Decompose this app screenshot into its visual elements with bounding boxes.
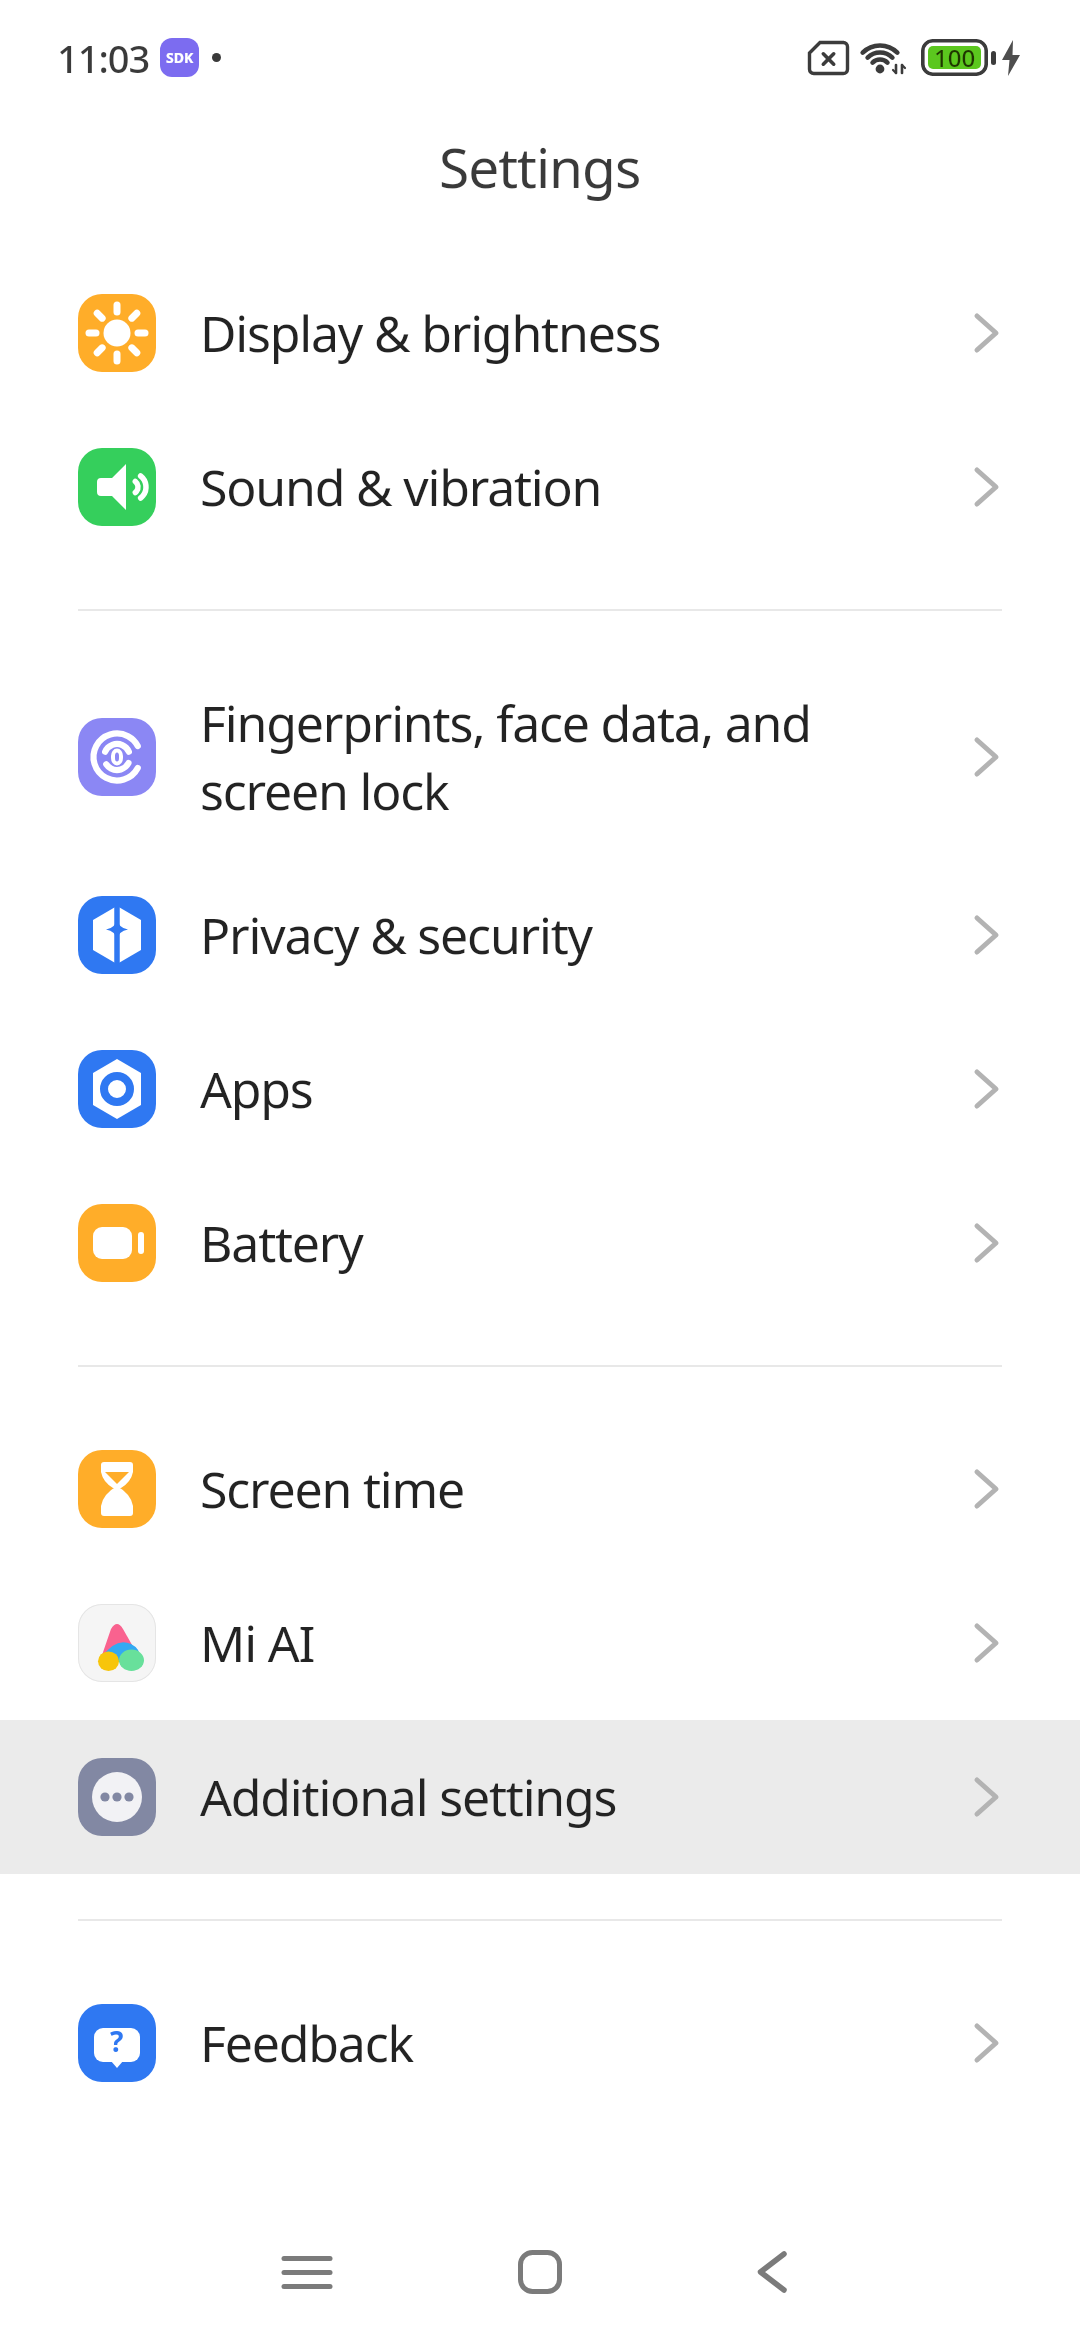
button[interactable]: Sound & vibration xyxy=(0,410,1080,564)
staticText: SDK xyxy=(166,48,194,67)
staticText: screen lock xyxy=(200,757,449,825)
staticText: Apps xyxy=(200,1055,313,1123)
staticText: Fingerprints, face data, and xyxy=(200,689,811,757)
button[interactable]: Apps xyxy=(0,1012,1080,1166)
button[interactable]: Additional settings xyxy=(0,1720,1080,1874)
button[interactable] xyxy=(722,2222,822,2322)
staticText: Settings xyxy=(439,129,641,204)
staticText: Battery xyxy=(200,1209,363,1277)
staticText: Display & brightness xyxy=(200,299,661,367)
staticText: ? xyxy=(110,2022,124,2060)
staticText: Screen time xyxy=(200,1455,465,1523)
staticText: 11:03 xyxy=(57,32,150,84)
staticText: Sound & vibration xyxy=(200,453,602,521)
button[interactable]: Display & brightness xyxy=(0,256,1080,410)
button[interactable]: ? xyxy=(0,1966,1080,2120)
staticText: 100 xyxy=(934,41,976,74)
staticText: Feedback xyxy=(200,2009,413,2077)
button[interactable]: Fingerprints, face data, and xyxy=(0,656,1080,858)
button[interactable]: Mi AI xyxy=(0,1566,1080,1720)
staticText: Additional settings xyxy=(200,1763,617,1831)
button[interactable] xyxy=(490,2222,590,2322)
staticText: Mi AI xyxy=(200,1609,315,1677)
button[interactable]: Screen time xyxy=(0,1412,1080,1566)
button[interactable]: Battery xyxy=(0,1166,1080,1320)
staticText: Privacy & security xyxy=(200,901,592,969)
button[interactable]: Privacy & security xyxy=(0,858,1080,1012)
button[interactable] xyxy=(257,2222,357,2322)
